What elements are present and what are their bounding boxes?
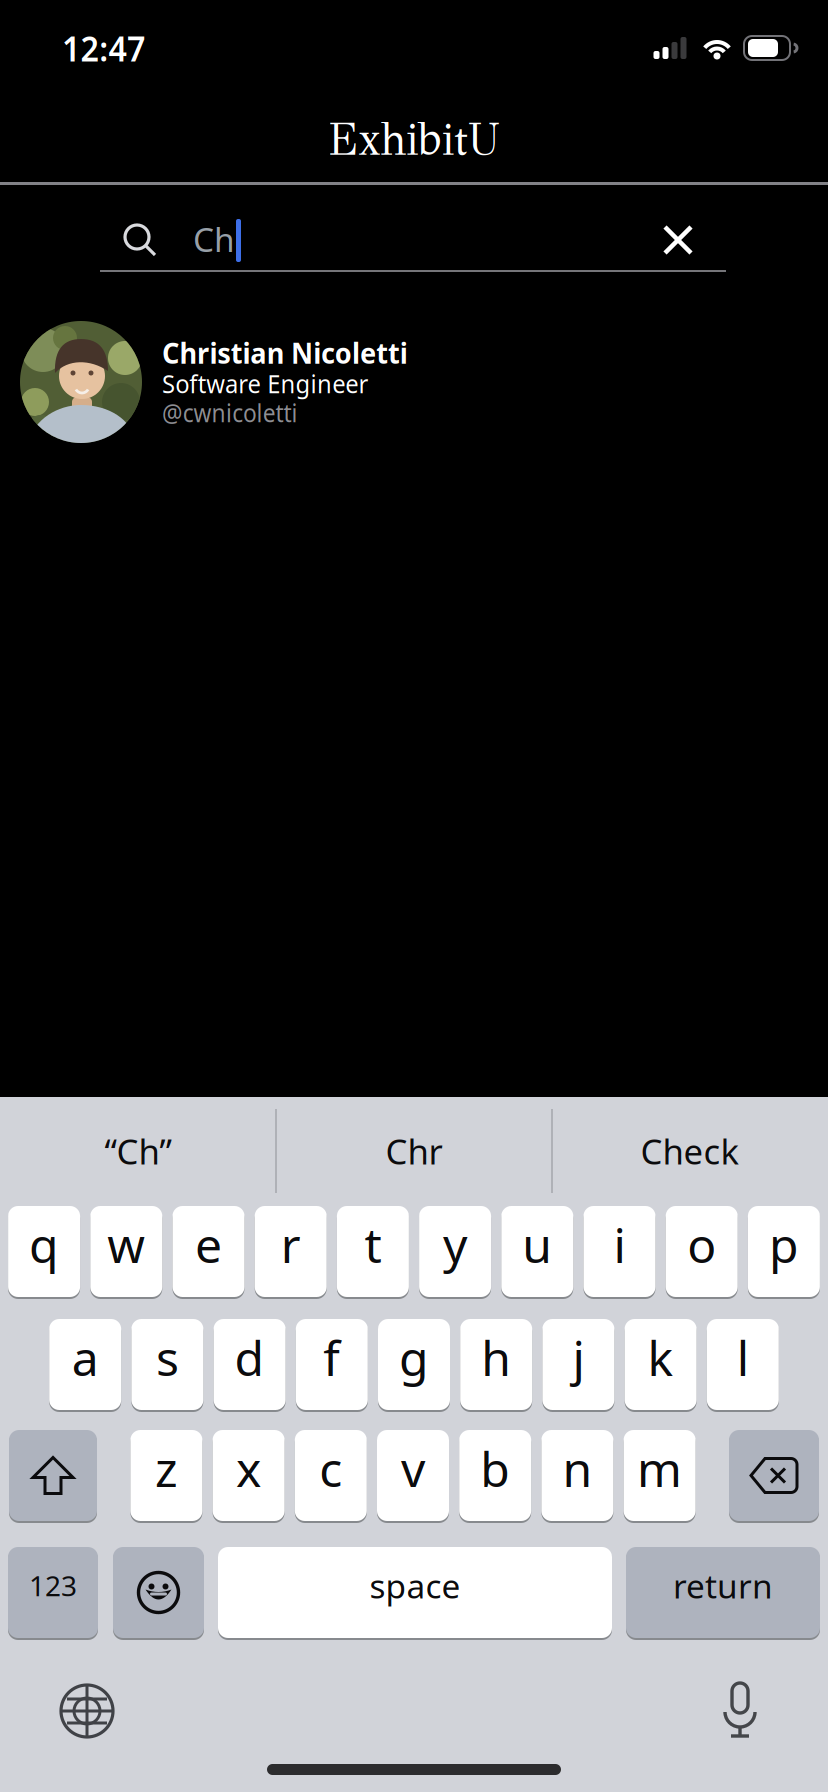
staticText: c xyxy=(319,1437,342,1500)
staticText: p xyxy=(769,1213,799,1276)
staticText: 12:47 xyxy=(62,25,152,71)
staticText: v xyxy=(401,1437,425,1500)
button[interactable]: y xyxy=(419,1205,491,1298)
button[interactable]: Chr xyxy=(276,1097,552,1205)
button[interactable]: return xyxy=(626,1546,820,1639)
staticText: n xyxy=(562,1437,592,1500)
button[interactable]: j xyxy=(542,1318,614,1411)
staticText: u xyxy=(522,1213,552,1276)
staticText: x xyxy=(236,1437,261,1500)
staticText: Chr xyxy=(385,1128,442,1174)
button[interactable] xyxy=(722,1682,758,1740)
staticText: w xyxy=(107,1213,145,1276)
staticText: s xyxy=(156,1326,179,1389)
button[interactable]: r xyxy=(255,1205,327,1298)
staticText: @cwnicoletti xyxy=(162,396,313,429)
staticText: space xyxy=(369,1563,460,1608)
button[interactable]: space xyxy=(218,1546,612,1639)
button[interactable]: i xyxy=(583,1205,655,1298)
button[interactable] xyxy=(663,225,693,255)
button[interactable]: s xyxy=(131,1318,203,1411)
button[interactable]: c xyxy=(295,1429,367,1522)
staticText: “Ch” xyxy=(104,1128,171,1174)
button[interactable]: l xyxy=(707,1318,779,1411)
staticText: k xyxy=(648,1326,674,1389)
button[interactable]: z xyxy=(130,1429,202,1522)
button[interactable]: k xyxy=(625,1318,697,1411)
staticText: Check xyxy=(640,1128,739,1174)
staticText: ExhibitU xyxy=(320,110,507,167)
staticText: d xyxy=(235,1326,265,1389)
staticText: q xyxy=(29,1213,59,1276)
button[interactable]: p xyxy=(748,1205,820,1298)
button[interactable]: d xyxy=(214,1318,286,1411)
button[interactable]: 123 xyxy=(8,1546,98,1639)
button[interactable]: f xyxy=(296,1318,368,1411)
staticText: b xyxy=(480,1437,510,1500)
button[interactable] xyxy=(59,1683,115,1739)
staticText: l xyxy=(737,1326,749,1389)
button[interactable]: h xyxy=(460,1318,532,1411)
button[interactable]: u xyxy=(501,1205,573,1298)
button[interactable]: Christian Nicoletti xyxy=(0,273,828,443)
staticText: Ch xyxy=(193,217,235,261)
button[interactable]: m xyxy=(624,1429,696,1522)
button[interactable]: n xyxy=(541,1429,613,1522)
button[interactable]: q xyxy=(8,1205,80,1298)
button[interactable]: “Ch” xyxy=(0,1097,276,1205)
button[interactable]: b xyxy=(459,1429,531,1522)
staticText: f xyxy=(323,1326,340,1389)
button[interactable] xyxy=(113,1546,204,1639)
button[interactable]: v xyxy=(377,1429,449,1522)
staticText: r xyxy=(281,1213,301,1276)
staticText: m xyxy=(637,1437,682,1500)
staticText: h xyxy=(481,1326,511,1389)
button[interactable]: t xyxy=(337,1205,409,1298)
button[interactable]: a xyxy=(49,1318,121,1411)
staticText: y xyxy=(443,1213,467,1276)
staticText: e xyxy=(195,1213,222,1276)
button[interactable]: Check xyxy=(552,1097,828,1205)
button[interactable]: x xyxy=(213,1429,285,1522)
staticText: o xyxy=(687,1213,716,1276)
staticText: j xyxy=(572,1326,584,1389)
staticText: i xyxy=(613,1213,625,1276)
staticText: Christian Nicoletti xyxy=(162,334,415,372)
button[interactable]: o xyxy=(666,1205,738,1298)
button[interactable] xyxy=(729,1429,819,1522)
staticText: Software Engineer xyxy=(162,367,381,400)
staticText: a xyxy=(72,1326,99,1389)
button[interactable] xyxy=(9,1429,97,1522)
staticText: return xyxy=(673,1563,773,1608)
button[interactable]: e xyxy=(172,1205,244,1298)
button[interactable]: g xyxy=(378,1318,450,1411)
staticText: t xyxy=(364,1213,381,1276)
staticText: z xyxy=(155,1437,178,1500)
staticText: 123 xyxy=(29,1567,77,1604)
staticText: g xyxy=(399,1326,429,1389)
button[interactable]: w xyxy=(90,1205,162,1298)
